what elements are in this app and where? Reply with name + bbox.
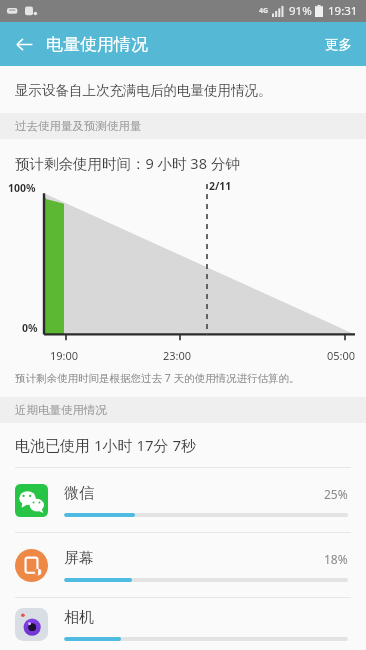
staticText: 预计剩余使用时间是根据您过去 7 天的使用情况进行估算的。	[15, 371, 300, 385]
staticText: 23:00	[163, 348, 192, 363]
staticText: 屏幕	[64, 549, 324, 568]
staticText: 18%	[324, 551, 348, 567]
staticText: 19:31	[328, 3, 358, 19]
staticText: 电量使用情况	[46, 34, 148, 55]
staticText: 更多	[325, 36, 352, 53]
staticText: 25%	[324, 486, 348, 502]
staticText: 4G	[259, 6, 269, 16]
staticText: 微信	[64, 484, 324, 503]
staticText: 预计剩余使用时间：9 小时 38 分钟	[15, 153, 240, 173]
button[interactable]: 相机	[0, 598, 366, 650]
staticText: 05:00	[327, 348, 356, 363]
staticText: 显示设备自上次充满电后的电量使用情况。	[15, 82, 272, 99]
staticText: 相机	[64, 608, 348, 627]
button[interactable]: 微信	[0, 468, 366, 532]
staticText: 19:00	[50, 348, 79, 363]
button[interactable]: 更多	[311, 26, 366, 63]
staticText: 91%	[289, 3, 312, 19]
button[interactable]: 屏幕	[0, 533, 366, 597]
staticText: 过去使用量及预测使用量	[15, 119, 142, 133]
button[interactable]: 返回	[6, 26, 42, 62]
staticText: 2/11	[209, 179, 232, 193]
staticText: 电池已使用 1小时 17分 7秒	[15, 435, 197, 455]
staticText: 100%	[8, 181, 36, 195]
staticText: 近期电量使用情况	[15, 403, 107, 417]
staticText: 0%	[22, 321, 38, 335]
